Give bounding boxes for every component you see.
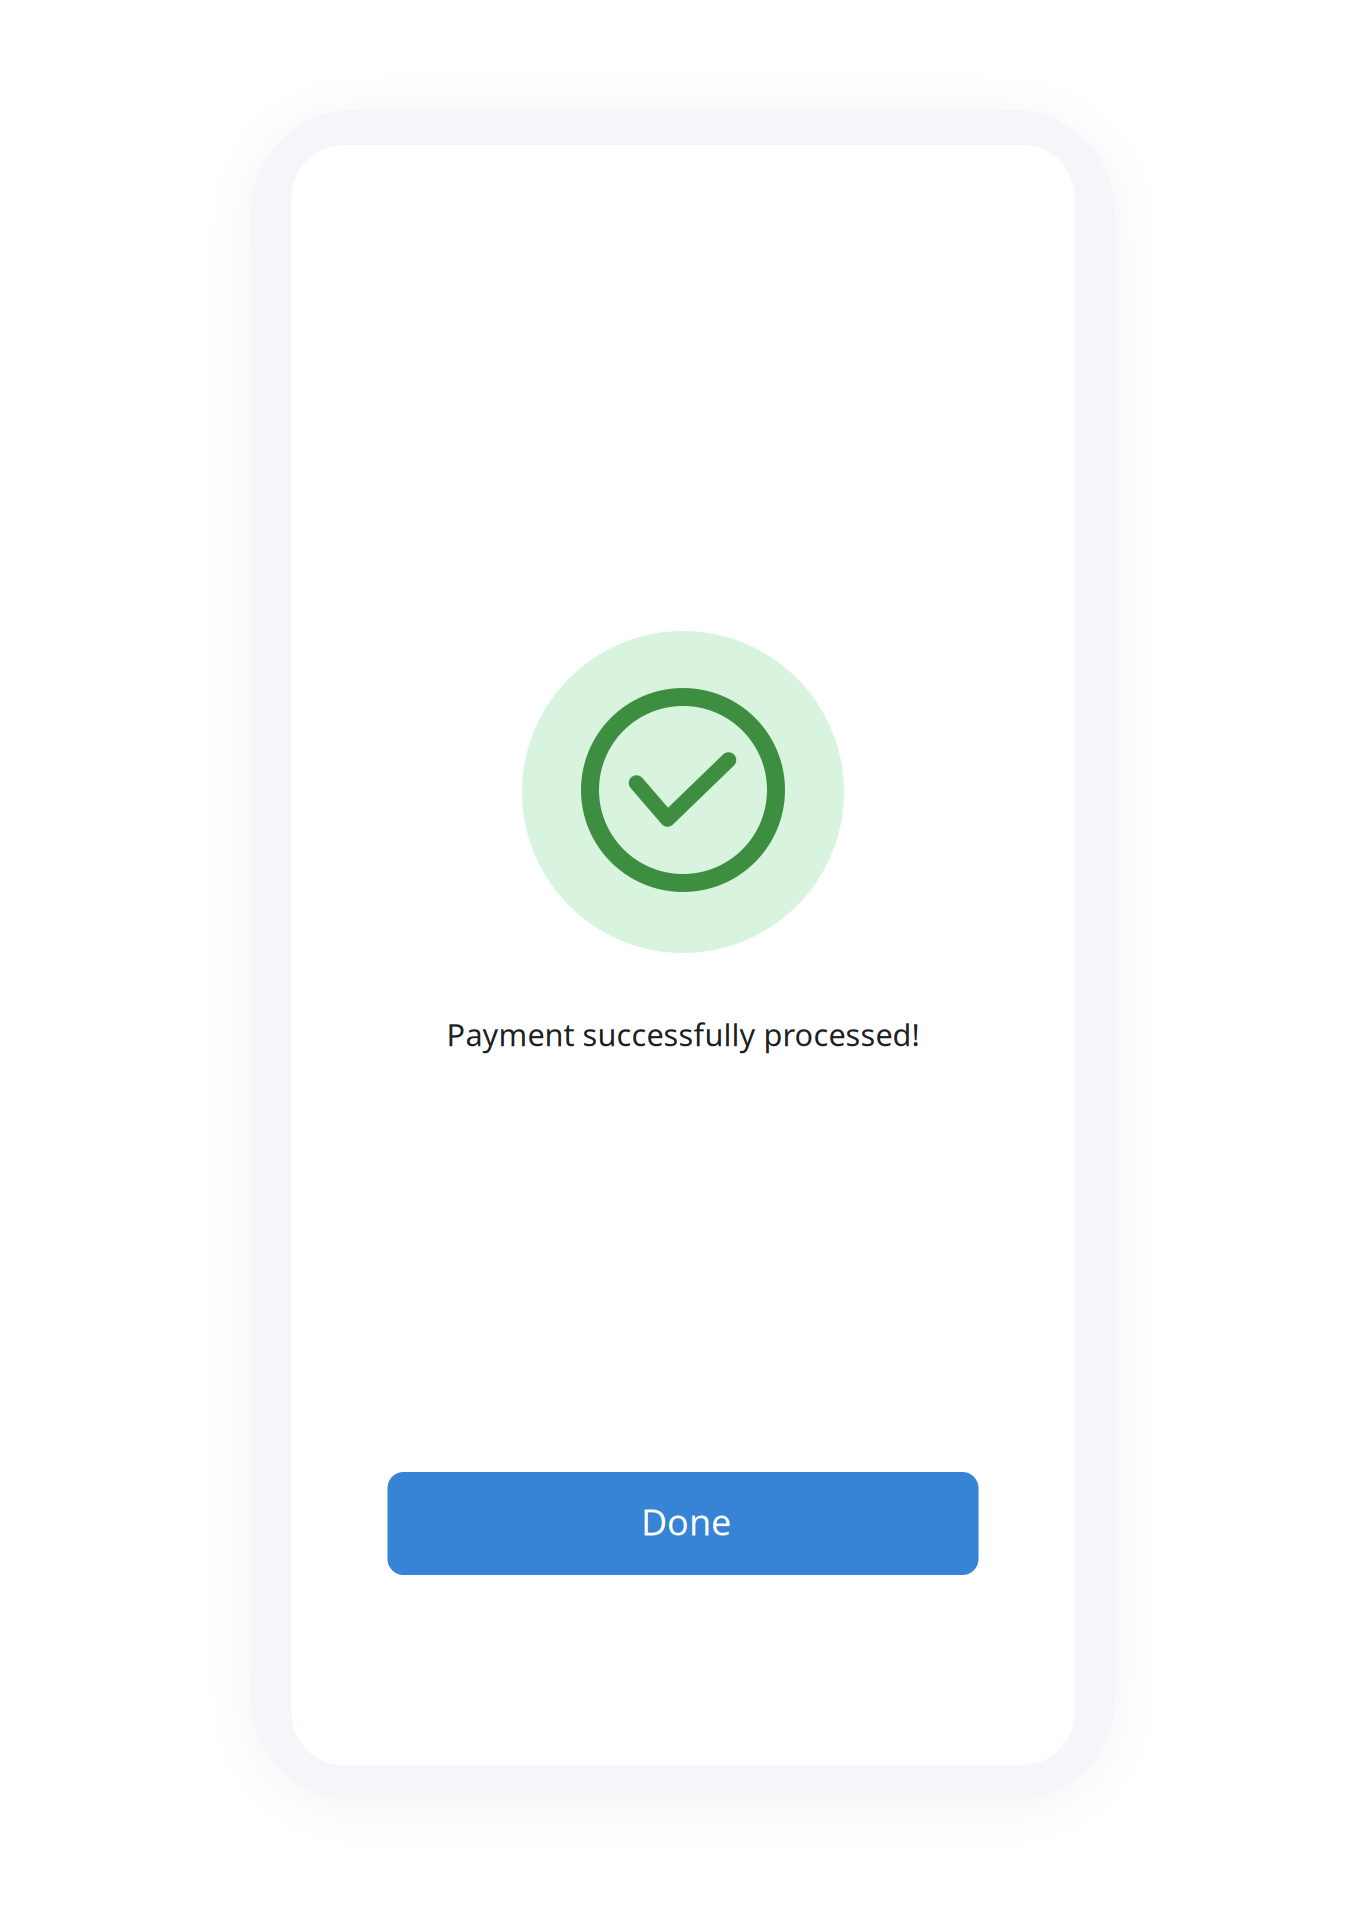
staticText: Done bbox=[641, 1498, 731, 1545]
button[interactable]: Done bbox=[387, 1472, 978, 1575]
staticText: Payment successfully processed! bbox=[446, 1014, 919, 1055]
